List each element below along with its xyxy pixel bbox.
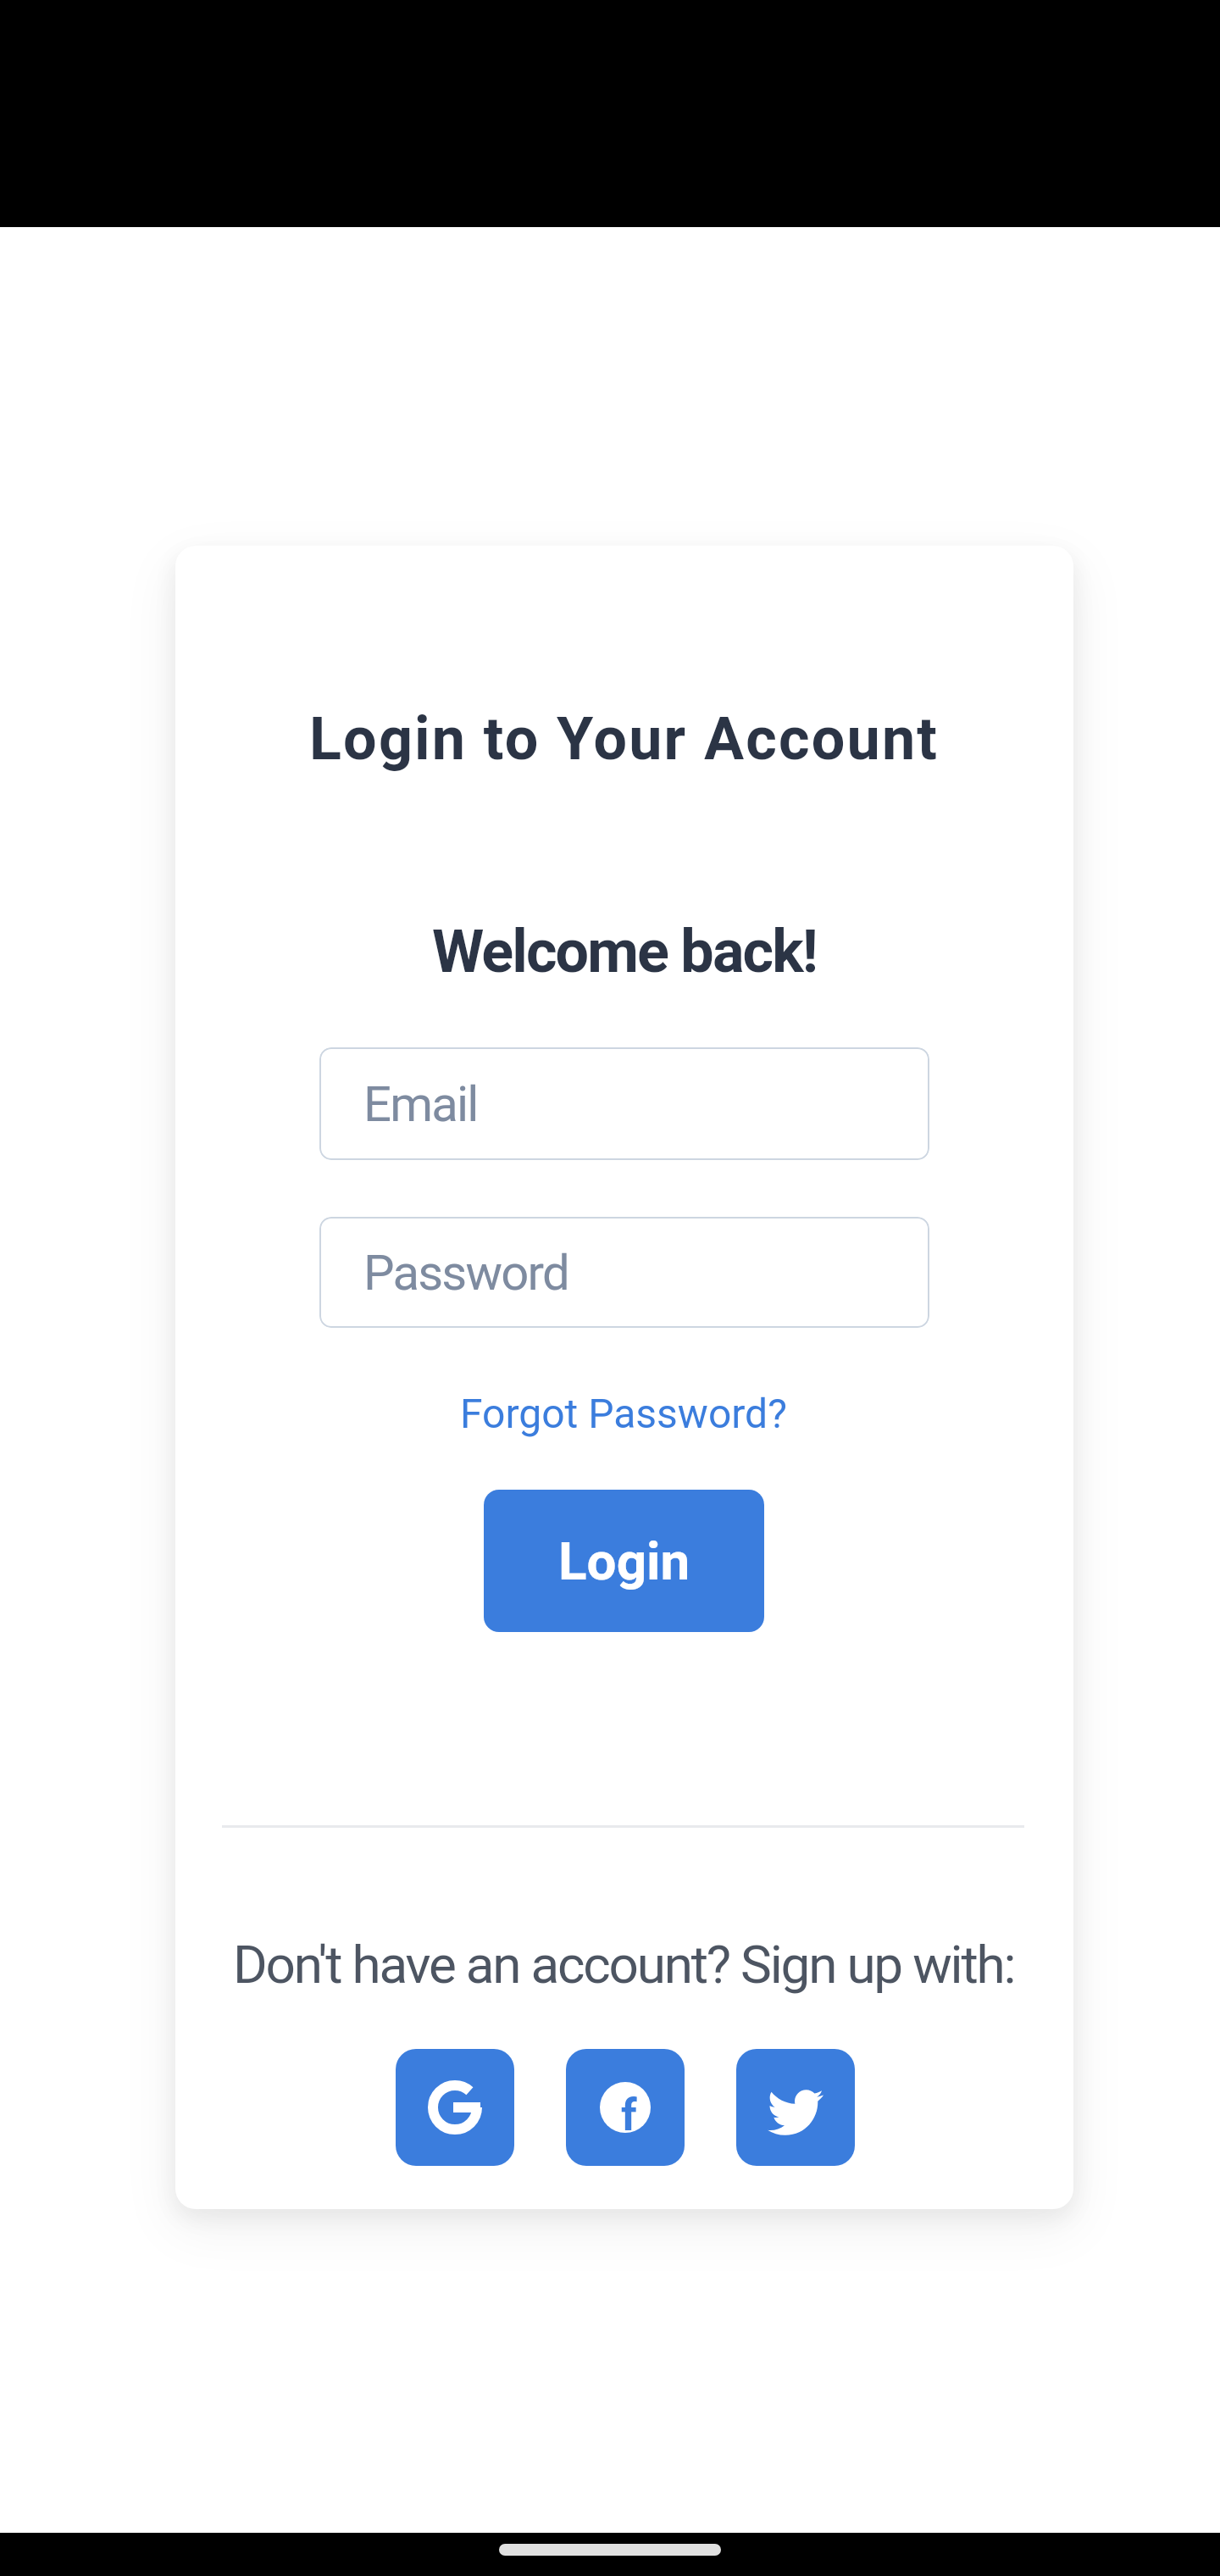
staticText: Welcome back! [432, 917, 817, 986]
button[interactable] [396, 2049, 514, 2166]
staticText: Password [363, 1244, 568, 1302]
staticText: f [621, 2090, 637, 2133]
staticText: Login to Your Account [309, 704, 940, 774]
button[interactable]: Forgot Password? [460, 1390, 787, 1437]
staticText: Forgot Password? [460, 1390, 787, 1437]
button[interactable]: f [566, 2049, 685, 2166]
staticText: Don't have an account? Sign up with: [233, 1934, 1015, 1996]
button[interactable] [736, 2049, 855, 2166]
button[interactable]: Email [319, 1047, 929, 1160]
staticText: Email [363, 1075, 478, 1133]
button[interactable]: Login [484, 1490, 764, 1632]
button[interactable]: Password [319, 1217, 929, 1328]
staticText: Login [558, 1530, 690, 1592]
